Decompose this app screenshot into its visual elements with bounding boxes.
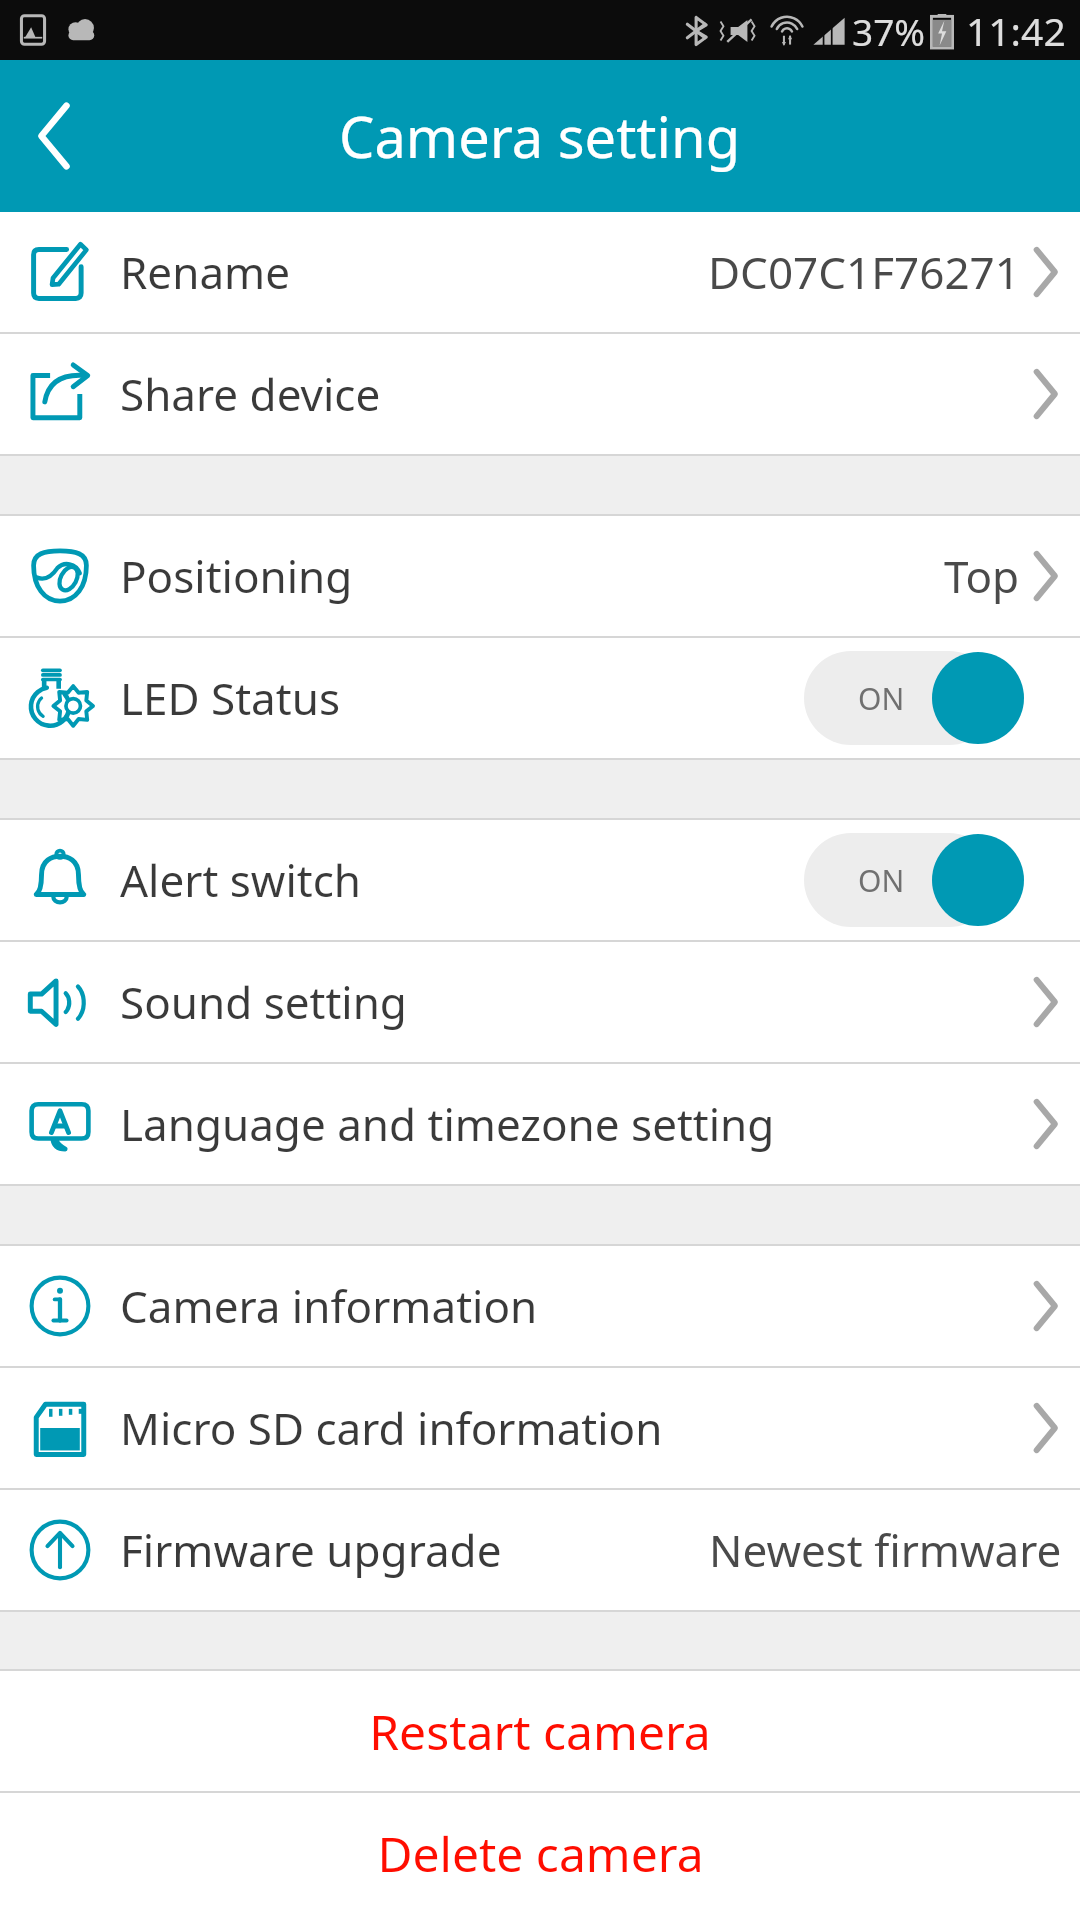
button[interactable]: Firmware upgrade: [0, 1490, 1080, 1610]
staticText: Camera information: [120, 1276, 538, 1336]
staticText: Micro SD card information: [120, 1398, 663, 1458]
staticText: Firmware upgrade: [120, 1520, 502, 1580]
staticText: Share device: [120, 364, 381, 424]
staticText: Rename: [120, 242, 291, 302]
button[interactable]: Toggle on: [796, 824, 1028, 936]
button[interactable]: Camera information: [0, 1246, 1080, 1366]
button[interactable]: Positioning: [0, 516, 1080, 636]
staticText: Delete camera: [377, 1821, 704, 1886]
staticText: ON: [858, 678, 905, 719]
button[interactable]: Micro SD card information: [0, 1368, 1080, 1488]
button[interactable]: LED Status: [0, 638, 1080, 758]
staticText: Top: [944, 546, 1020, 606]
button[interactable]: Toggle on: [796, 642, 1028, 754]
staticText: Newest firmware: [709, 1520, 1062, 1580]
staticText: Camera setting: [339, 98, 741, 174]
button[interactable]: Alert switch: [0, 820, 1080, 940]
staticText: Positioning: [120, 546, 353, 606]
staticText: Alert switch: [120, 850, 361, 910]
staticText: ON: [858, 860, 905, 901]
staticText: 11:42: [966, 4, 1066, 57]
button[interactable]: Delete camera: [0, 1793, 1080, 1913]
button[interactable]: Rename: [0, 212, 1080, 332]
button[interactable]: Back: [0, 81, 110, 191]
staticText: Language and timezone setting: [120, 1094, 775, 1154]
staticText: DC07C1F76271: [708, 242, 1020, 302]
staticText: Sound setting: [120, 972, 407, 1032]
staticText: LED Status: [120, 668, 340, 728]
button[interactable]: Share device: [0, 334, 1080, 454]
button[interactable]: Language and timezone setting: [0, 1064, 1080, 1184]
staticText: 37%: [852, 6, 926, 56]
button[interactable]: Restart camera: [0, 1671, 1080, 1791]
button[interactable]: Sound setting: [0, 942, 1080, 1062]
staticText: Restart camera: [369, 1699, 711, 1764]
